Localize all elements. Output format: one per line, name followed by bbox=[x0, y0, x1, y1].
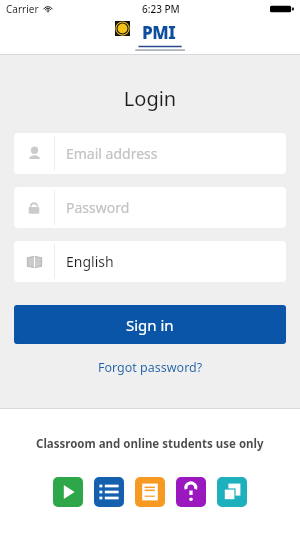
staticText: Classroom and online students use only bbox=[36, 436, 264, 452]
staticText: 6:23 PM bbox=[142, 2, 180, 16]
staticText: Password bbox=[66, 198, 130, 217]
other: Password bbox=[26, 200, 42, 216]
staticText: Forgot password? bbox=[98, 359, 203, 376]
button[interactable]: Forgot password? bbox=[0, 356, 300, 378]
button[interactable]: Book bbox=[135, 477, 165, 507]
button[interactable]: Password bbox=[14, 187, 286, 228]
other: Language bbox=[26, 253, 43, 270]
staticText: Carrier bbox=[6, 2, 39, 16]
button[interactable]: Language bbox=[14, 241, 286, 282]
other: Email bbox=[26, 145, 43, 162]
button[interactable]: Help bbox=[176, 477, 206, 507]
button[interactable]: Play bbox=[53, 477, 83, 507]
staticText: Email address bbox=[66, 144, 158, 163]
button[interactable]: Email bbox=[14, 133, 286, 174]
staticText: Sign in bbox=[126, 315, 174, 335]
button[interactable]: Sign in bbox=[14, 305, 286, 344]
button[interactable]: Windows bbox=[217, 477, 247, 507]
button[interactable]: List bbox=[94, 477, 124, 507]
staticText: PMI bbox=[142, 21, 176, 44]
staticText: Login bbox=[0, 85, 300, 112]
staticText: English bbox=[66, 252, 114, 271]
